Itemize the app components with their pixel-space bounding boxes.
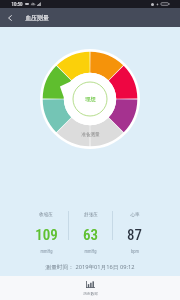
staticText: mmHg bbox=[84, 249, 97, 254]
staticText: 10:50 bbox=[11, 1, 23, 7]
staticText: 心率 bbox=[130, 212, 140, 218]
staticText: 87 bbox=[127, 226, 142, 244]
staticText: 血压测量 bbox=[25, 14, 49, 21]
staticText: 理想 bbox=[85, 96, 96, 103]
staticText: 历史数据 bbox=[83, 291, 98, 296]
staticText: 63 bbox=[83, 226, 98, 244]
button[interactable]: 历史数据 bbox=[83, 281, 98, 296]
staticText: bpm bbox=[131, 249, 139, 254]
staticText: 准备测量 bbox=[81, 132, 100, 138]
staticText: 舒张压 bbox=[84, 212, 98, 218]
button[interactable]: Back bbox=[0, 8, 19, 27]
staticText: 收缩压 bbox=[39, 212, 53, 218]
staticText: 109 bbox=[35, 226, 58, 244]
staticText: 测量时间： 2019年01月16日 09:12 bbox=[45, 263, 135, 271]
staticText: mmHg bbox=[40, 249, 53, 254]
